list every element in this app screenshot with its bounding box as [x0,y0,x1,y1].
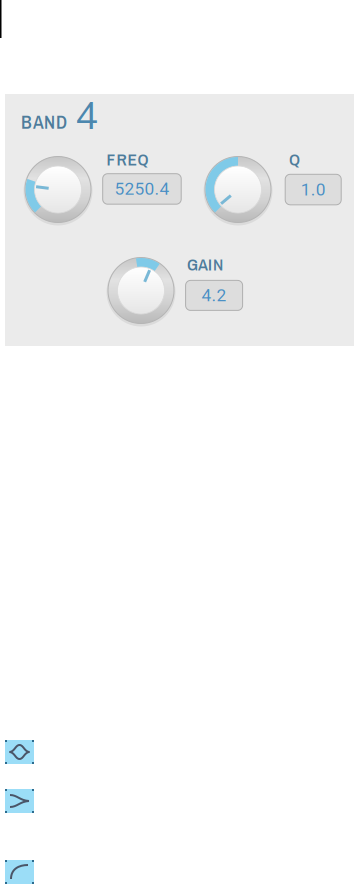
staticText: F R E Q [106,147,148,171]
staticText: 5250.4 [114,179,169,199]
staticText: Q [289,147,300,171]
staticText: B A N D [21,109,67,135]
button[interactable]: Bell filter [5,740,34,764]
staticText: 4.2 [202,285,227,305]
staticText: 1.0 [301,179,326,200]
staticText: 4 [75,90,98,143]
staticText: G A I N [187,252,223,276]
button[interactable]: Low cut filter [5,860,34,884]
button[interactable]: Shelf filter [5,789,34,813]
